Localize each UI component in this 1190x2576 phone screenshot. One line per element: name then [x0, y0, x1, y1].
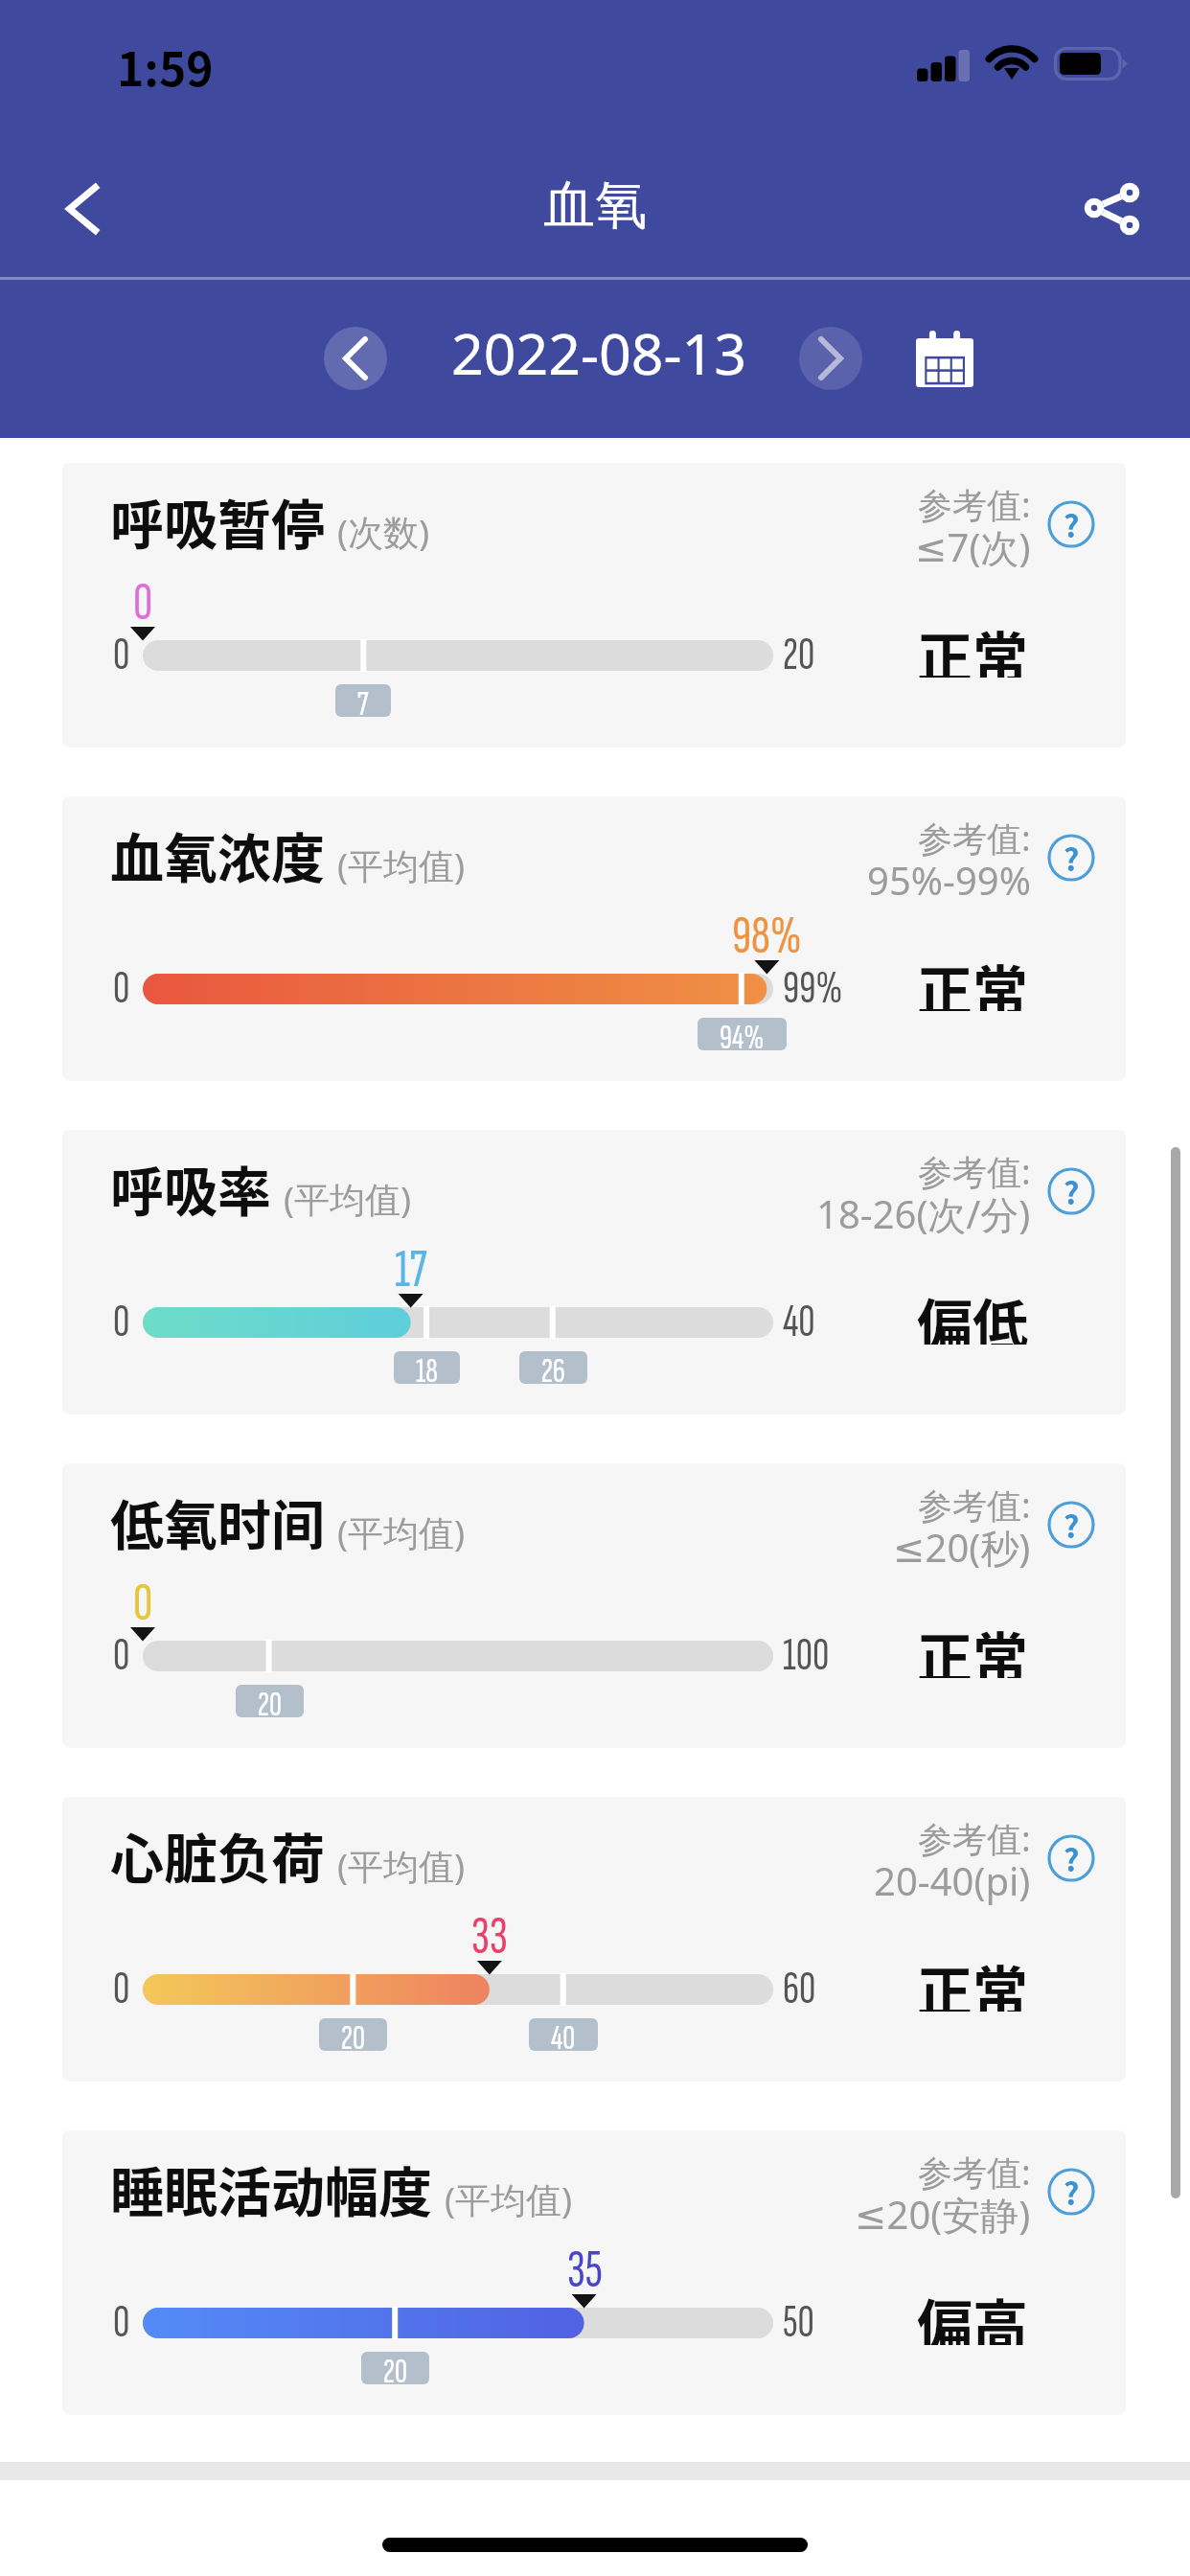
staticText: 40 [783, 1295, 815, 1350]
staticText: 40 [551, 2018, 576, 2051]
staticText: 0 [113, 2295, 130, 2351]
staticText: 94% [720, 1018, 765, 1050]
button[interactable]: 低氧时间 [62, 1463, 1126, 1748]
button[interactable]: Help [1042, 1829, 1100, 1887]
staticText: 60 [783, 1962, 816, 2017]
staticText: 参考值: [918, 815, 1031, 862]
staticText: ≤20(安静) [855, 2188, 1031, 2240]
staticText: 98% [732, 905, 802, 958]
button[interactable]: 心脏负荷 [62, 1797, 1126, 2081]
staticText: 呼吸率 [110, 1149, 271, 1227]
staticText: 参考值: [918, 1148, 1031, 1195]
staticText: 0 [113, 1962, 130, 2017]
staticText: 18-26(次/分) [816, 1187, 1031, 1239]
staticText: 参考值: [918, 2149, 1031, 2196]
staticText: 参考值: [918, 1815, 1031, 1862]
staticText: 心脏负荷 [110, 1816, 325, 1894]
button[interactable]: 呼吸暂停 [62, 463, 1126, 747]
staticText: (平均值) [445, 2174, 573, 2223]
staticText: ? [1064, 1169, 1080, 1213]
staticText: 17 [395, 1238, 427, 1292]
staticText: 50 [783, 2295, 814, 2351]
staticText: ? [1064, 502, 1080, 546]
staticText: (平均值) [337, 1507, 466, 1556]
staticText: (平均值) [337, 1841, 466, 1890]
button[interactable]: Next day [799, 327, 862, 390]
staticText: 99% [783, 961, 843, 1017]
staticText: 0 [133, 1572, 153, 1625]
button[interactable]: 血氧浓度 [62, 796, 1126, 1081]
button[interactable]: 呼吸率 [62, 1130, 1126, 1414]
staticText: 正常 [917, 948, 1029, 1011]
button[interactable]: Back [25, 151, 140, 266]
staticText: ? [1064, 1836, 1080, 1880]
staticText: 正常 [917, 1615, 1029, 1678]
button[interactable]: Calendar [897, 310, 993, 406]
staticText: 20 [783, 628, 815, 683]
button[interactable]: Previous day [324, 327, 387, 390]
staticText: 参考值: [918, 1482, 1031, 1529]
staticText: 0 [113, 1295, 130, 1350]
staticText: 20 [258, 1685, 282, 1717]
staticText: 偏高 [917, 2282, 1029, 2345]
staticText: 0 [113, 961, 130, 1017]
staticText: 参考值: [918, 481, 1031, 528]
staticText: 睡眠活动幅度 [110, 2150, 432, 2227]
staticText: 呼吸暂停 [110, 482, 325, 560]
staticText: 低氧时间 [110, 1483, 325, 1560]
staticText: ? [1064, 836, 1080, 880]
staticText: 18 [416, 1351, 438, 1384]
staticText: 1:59 [117, 33, 214, 98]
staticText: 偏低 [917, 1281, 1029, 1345]
staticText: 血氧浓度 [110, 816, 325, 893]
button[interactable]: Help [1042, 1162, 1100, 1220]
staticText: (平均值) [284, 1174, 412, 1223]
staticText: 26 [541, 1351, 565, 1384]
staticText: 20 [341, 2018, 365, 2051]
staticText: 2022-08-13 [451, 314, 746, 391]
button[interactable]: Help [1042, 495, 1100, 553]
staticText: 35 [567, 2239, 603, 2292]
staticText: 0 [113, 1628, 130, 1684]
staticText: ? [1064, 1503, 1080, 1547]
button[interactable]: Share [1054, 151, 1169, 266]
staticText: 20-40(pi) [874, 1854, 1031, 1906]
staticText: 95%-99% [867, 854, 1031, 906]
button[interactable]: Help [1042, 1496, 1100, 1553]
staticText: 7 [357, 684, 369, 717]
staticText: 100 [783, 1628, 830, 1684]
staticText: (平均值) [337, 840, 466, 889]
button[interactable]: Help [1042, 2163, 1100, 2220]
button[interactable]: Help [1042, 829, 1100, 886]
button[interactable]: 睡眠活动幅度 [62, 2130, 1126, 2415]
staticText: 正常 [917, 1948, 1029, 2012]
staticText: ? [1064, 2170, 1080, 2214]
staticText: 血氧 [543, 172, 647, 238]
staticText: 0 [133, 571, 153, 625]
staticText: 20 [383, 2352, 407, 2384]
staticText: ≤7(次) [915, 520, 1031, 572]
staticText: (次数) [337, 507, 430, 556]
staticText: 0 [113, 628, 130, 683]
staticText: 正常 [917, 614, 1029, 678]
staticText: ≤20(秒) [893, 1521, 1031, 1573]
staticText: 33 [471, 1905, 508, 1959]
